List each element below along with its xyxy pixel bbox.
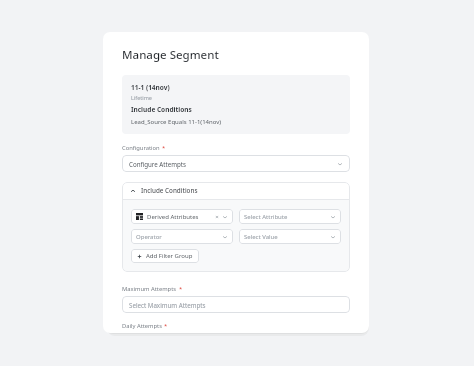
staticText: Include Conditions (141, 186, 198, 195)
staticText: Configure Attempts (129, 160, 187, 168)
staticText: Manage Segment (122, 47, 219, 63)
staticText: Daily Attempts (122, 322, 162, 330)
staticText: Maximum Attempts (122, 285, 177, 293)
staticText: 11-1 (14nov) (131, 83, 170, 92)
staticText: Derived Attributes (147, 213, 199, 221)
staticText: Select Value (244, 233, 278, 241)
staticText: * (179, 285, 183, 293)
staticText: Configuration (122, 144, 160, 152)
staticText: Add Filter Group (146, 252, 193, 260)
button[interactable]: Include Conditions (122, 182, 350, 199)
staticText: Select Attribute (244, 213, 288, 221)
button[interactable]: Configure Attempts (122, 155, 350, 172)
staticText: * (162, 144, 166, 152)
button[interactable]: Select Maximum Attempts (122, 296, 350, 313)
staticText: Lifetime (131, 94, 152, 101)
other: Derived attributes (136, 213, 143, 220)
staticText: Select Maximum Attempts (129, 301, 206, 309)
button[interactable]: Add Filter Group (131, 249, 199, 263)
staticText: Lead_Source Equals 11-1(14nov) (131, 118, 222, 126)
staticText: * (164, 322, 168, 330)
staticText: Include Conditions (131, 105, 192, 114)
button[interactable]: Operator (131, 229, 233, 244)
staticText: Operator (136, 233, 162, 241)
button[interactable]: Select Value (239, 229, 341, 244)
button[interactable]: Select Attribute (239, 209, 341, 224)
button[interactable]: Derived attributes (131, 209, 233, 224)
